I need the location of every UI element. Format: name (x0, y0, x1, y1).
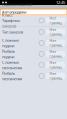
staticText: Нет границ (49, 38, 61, 48)
staticText: Класс Тарифных заказов (2, 12, 20, 29)
staticText: Нет границ (49, 60, 61, 70)
button[interactable]: Нет границ (46, 51, 65, 57)
staticText: Нет границ (49, 27, 61, 37)
button[interactable]: Нет границ (46, 62, 65, 68)
staticText: Сложные подачи (2, 37, 19, 48)
staticText: Нет границ (49, 16, 61, 25)
staticText: Нет границ (49, 71, 61, 81)
staticText: Нет границ (49, 49, 61, 59)
staticText: Рыбаль подачи (2, 48, 15, 59)
staticText: Новомосковский автопродажи (2, 2, 32, 12)
staticText: Сложные назначения (2, 59, 22, 70)
staticText: Автопродажи (2, 9, 26, 15)
button[interactable]: Нет границ (46, 73, 65, 79)
staticText: Рыбаль назначения (2, 70, 22, 81)
button[interactable]: Нет границ (46, 29, 65, 35)
staticText: 12:45 (56, 0, 65, 5)
button[interactable]: Нет границ (46, 17, 65, 23)
button[interactable]: Нет границ (46, 40, 65, 46)
staticText: Тип заказов (2, 29, 23, 35)
